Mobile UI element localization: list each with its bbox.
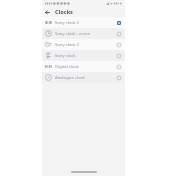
staticText: Clocks <box>55 8 73 16</box>
button[interactable]: Sony clock <box>42 50 125 61</box>
staticText: Digital clock <box>55 64 79 70</box>
staticText: Sony clock <box>55 53 76 59</box>
staticText: Sony clock - curve <box>55 31 90 37</box>
button[interactable]: Analogue clock <box>42 72 125 83</box>
button[interactable]: Back <box>42 7 52 17</box>
button[interactable]: Sony clock 3 <box>42 17 125 28</box>
staticText: Analogue clock <box>55 75 85 81</box>
staticText: Sony clock 2 <box>55 42 79 48</box>
button[interactable]: Home <box>71 171 97 173</box>
button[interactable]: Sony clock 2 <box>42 39 125 50</box>
staticText: Sony clock 3 <box>55 20 79 26</box>
button[interactable]: Digital clock <box>42 61 125 72</box>
button[interactable]: Sony clock - curve <box>42 28 125 39</box>
